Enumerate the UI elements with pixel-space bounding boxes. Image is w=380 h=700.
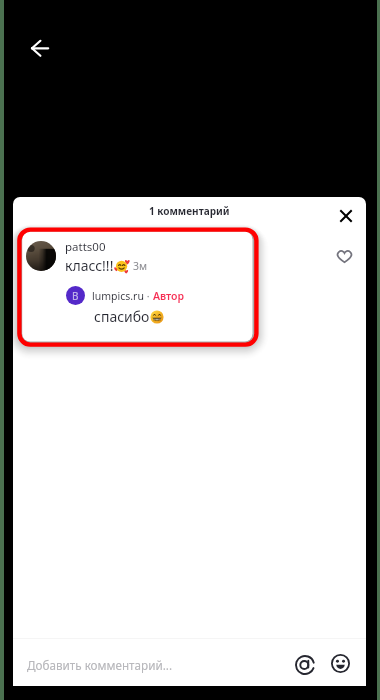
button[interactable]: Like	[336, 248, 353, 265]
staticText: спасибо	[94, 307, 150, 326]
button[interactable]: lumpics.ru profile photo	[66, 286, 85, 305]
button[interactable]: Mention	[295, 655, 315, 675]
button[interactable]: lumpics.ru	[92, 289, 144, 303]
staticText: lumpics.ru	[92, 289, 144, 303]
staticText: класс!!!	[65, 256, 114, 275]
button[interactable]: patts00 profile photo	[26, 241, 56, 271]
button[interactable]: Emoji	[331, 654, 350, 673]
staticText: patts00	[65, 239, 106, 255]
button[interactable]: patts00	[65, 239, 106, 255]
staticText: B	[72, 289, 79, 303]
staticText: 3м	[133, 259, 148, 273]
button[interactable]: Back	[30, 39, 50, 59]
staticText: Автор	[153, 289, 185, 303]
staticText: Добавить комментарий...	[27, 657, 173, 673]
staticText: ·	[144, 289, 153, 303]
staticText: 1 комментарий	[149, 204, 230, 218]
button[interactable]: Добавить комментарий...	[13, 639, 283, 686]
button[interactable]: Close	[340, 210, 352, 222]
